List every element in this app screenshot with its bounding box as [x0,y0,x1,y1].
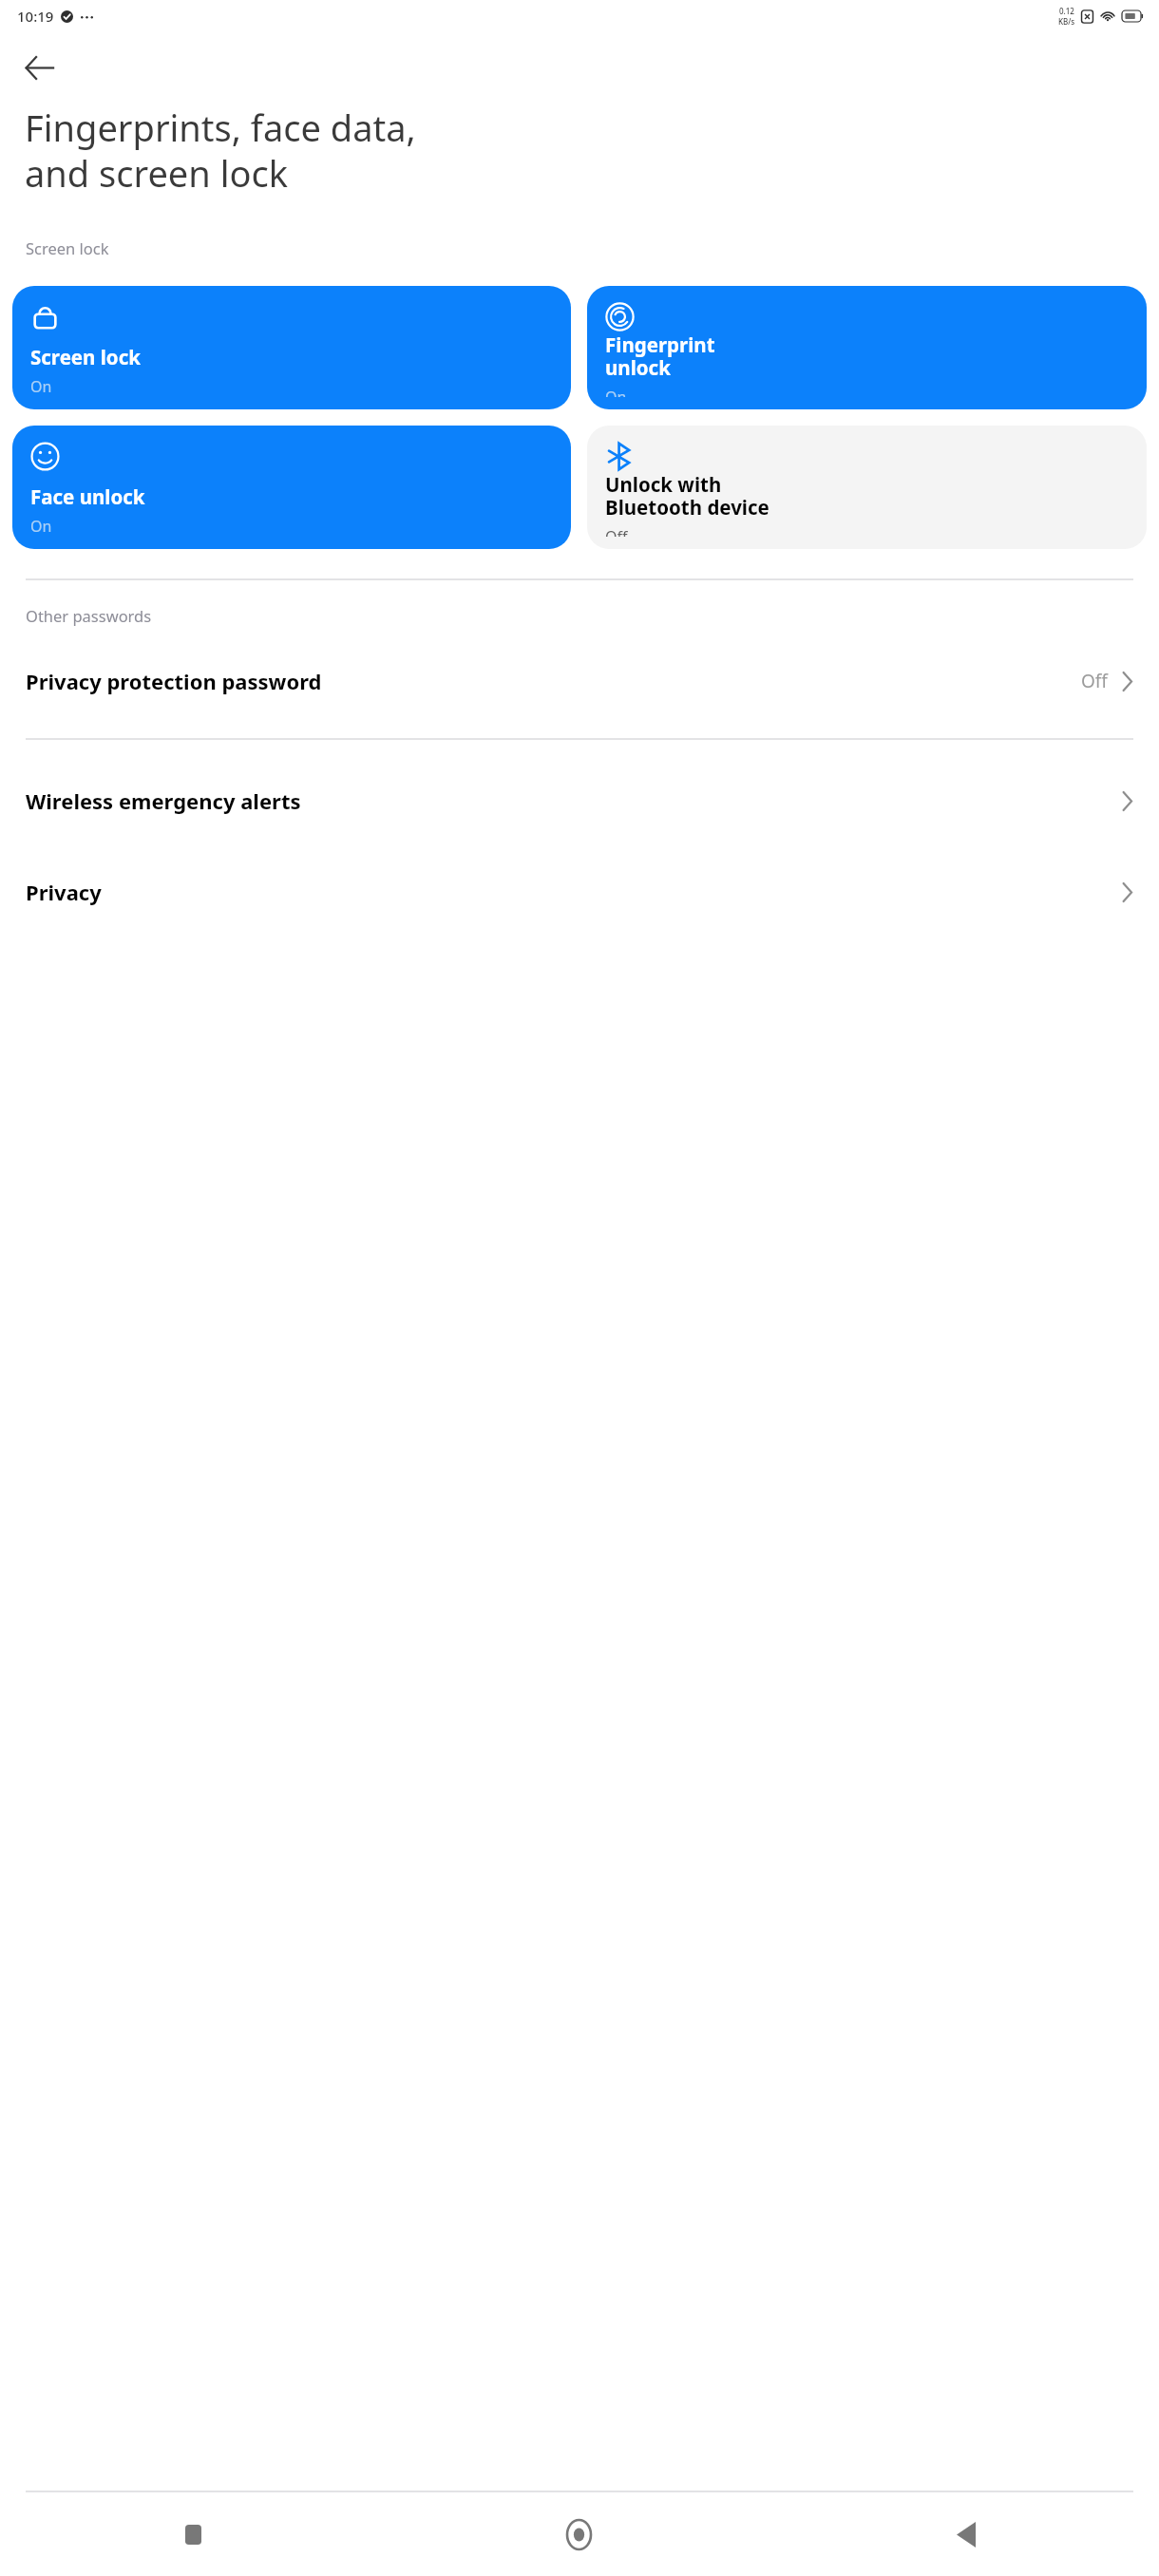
button[interactable]: Home [386,2492,772,2576]
staticText: Privacy [26,878,1121,906]
staticText: 0.12 [1059,6,1074,16]
staticText: Unlock with Bluetooth device [605,471,769,521]
button[interactable]: Wireless emergency alerts [0,759,1159,843]
staticText: Screen lock [26,237,109,258]
button[interactable]: Recent apps [0,2492,386,2576]
staticText: Screen lock [30,344,141,370]
staticText: Face unlock [30,483,145,510]
staticText: On [30,516,52,537]
staticText: KB/s [1058,16,1075,27]
staticText: 10:19 [17,7,54,26]
staticText: Fingerprints, face data, and screen lock [25,103,416,198]
button[interactable]: Fingerprint unlock [587,286,1147,409]
staticText: Off [605,526,628,537]
button[interactable]: Unlock with Bluetooth device [587,426,1147,549]
staticText: Privacy protection password [26,667,1081,695]
staticText: On [605,387,627,397]
staticText: Fingerprint unlock [605,331,715,381]
staticText: Wireless emergency alerts [26,786,1121,815]
staticText: Off [1081,669,1108,693]
button[interactable]: Privacy [0,850,1159,934]
button[interactable]: Privacy protection password [0,639,1159,723]
staticText: Other passwords [26,605,152,626]
button[interactable]: Back [772,2492,1159,2576]
staticText: On [30,376,52,397]
button[interactable]: Screen lock [12,286,571,409]
button[interactable]: Back [11,40,66,95]
button[interactable]: Face unlock [12,426,571,549]
